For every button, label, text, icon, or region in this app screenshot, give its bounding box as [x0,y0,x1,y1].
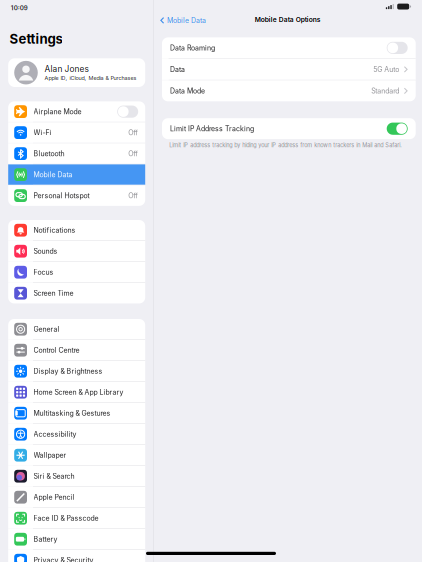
button[interactable]: Home Screen & App Library [8,382,145,402]
button[interactable]: Accessibility [8,424,145,444]
staticText: Bluetooth [34,149,65,158]
button[interactable]: Siri & Search [8,466,145,486]
staticText: Standard [371,87,399,95]
staticText: Privacy & Security [34,556,94,562]
staticText: Airplane Mode [34,107,82,116]
staticText: Off [128,149,138,158]
button[interactable]: Focus [8,262,145,282]
button[interactable]: Data Roaming [162,37,416,58]
button[interactable]: Wallpaper [8,445,145,465]
button[interactable]: Control Centre [8,340,145,360]
button[interactable]: Mobile Data [154,13,210,28]
staticText: Sounds [34,247,58,255]
staticText: Data Roaming [170,44,215,52]
staticText: Home Screen & App Library [34,388,124,396]
staticText: Multitasking & Gestures [34,409,111,417]
staticText: Personal Hotspot [34,191,90,200]
button[interactable]: Multitasking & Gestures [8,403,145,423]
staticText: Apple Pencil [34,493,75,501]
staticText: Apple ID, iCloud, Media & Purchases [44,75,136,81]
button[interactable]: Limit IP Address Tracking [162,118,416,139]
button[interactable]: Data [162,59,416,80]
staticText: Limit IP address tracking by hiding your… [169,142,402,149]
staticText: Accessibility [34,430,77,438]
button[interactable]: Alan Jones [8,58,145,87]
button[interactable]: Notifications [8,220,145,240]
staticText: Display & Brightness [34,367,103,375]
button[interactable]: Data Mode [162,80,416,101]
button[interactable]: Wi-Fi [8,122,145,143]
staticText: Mobile Data Options [255,16,321,24]
staticText: Mobile Data [167,16,206,25]
staticText: Screen Time [34,289,74,297]
staticText: Control Centre [34,346,80,354]
staticText: Data [170,65,185,74]
staticText: Focus [34,268,54,276]
button[interactable]: Sounds [8,241,145,261]
staticText: 10:09 [11,4,28,12]
staticText: Notifications [34,226,76,234]
staticText: Data Mode [170,87,205,95]
staticText: Alan Jones [44,64,88,74]
staticText: Battery [34,535,58,543]
button[interactable]: Display & Brightness [8,361,145,381]
staticText: Wallpaper [34,451,67,459]
button[interactable]: Apple Pencil [8,487,145,507]
staticText: Face ID & Passcode [34,514,99,522]
staticText: Off [128,128,138,137]
staticText: 5G Auto [373,65,399,74]
button[interactable]: General [8,319,145,339]
button[interactable]: Airplane Mode [8,101,145,122]
button[interactable]: Battery [8,529,145,549]
staticText: Settings [9,31,62,47]
staticText: Siri & Search [34,472,75,480]
staticText: Wi-Fi [34,128,52,137]
staticText: Limit IP Address Tracking [170,124,254,133]
button[interactable]: Bluetooth [8,143,145,164]
button[interactable]: Screen Time [8,283,145,303]
button[interactable]: Mobile Data [8,164,145,185]
staticText: Mobile Data [34,170,73,179]
staticText: General [34,325,60,333]
button[interactable]: Privacy & Security [8,550,145,562]
staticText: Off [128,191,138,200]
button[interactable]: Personal Hotspot [8,185,145,206]
button[interactable]: Face ID & Passcode [8,508,145,528]
